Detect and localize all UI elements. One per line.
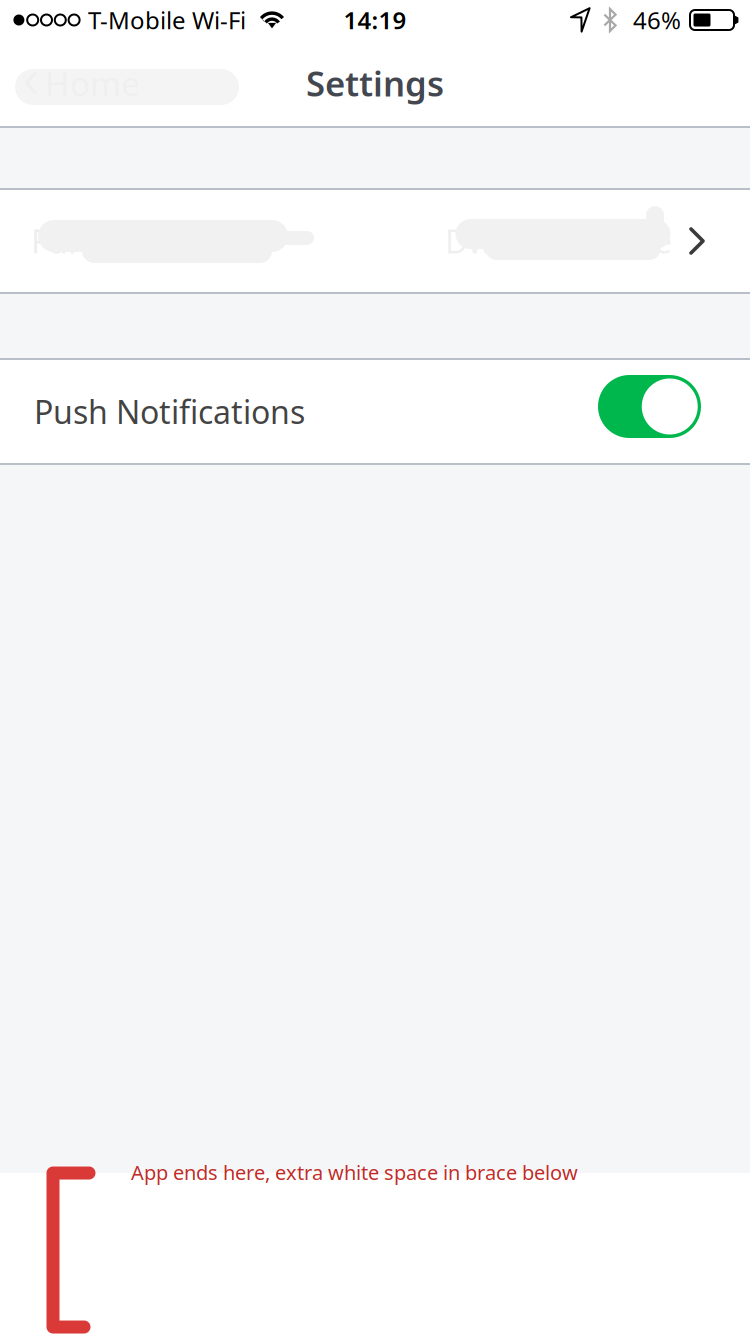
staticText: 46% [633, 4, 681, 36]
button[interactable]: Home [0, 40, 158, 126]
button[interactable]: Funding Source [0, 190, 750, 292]
staticText: Settings [306, 60, 444, 106]
staticText: Push Notifications [34, 390, 305, 433]
staticText: 14:19 [343, 4, 406, 36]
button[interactable]: Push Notifications [598, 380, 701, 443]
staticText: T-Mobile Wi-Fi [88, 4, 246, 36]
staticText: App ends here, extra white space in brac… [131, 1159, 578, 1186]
staticText: Dwolla Balance [445, 220, 672, 262]
staticText: Funding Source [31, 220, 267, 262]
staticText: Home [45, 61, 140, 105]
